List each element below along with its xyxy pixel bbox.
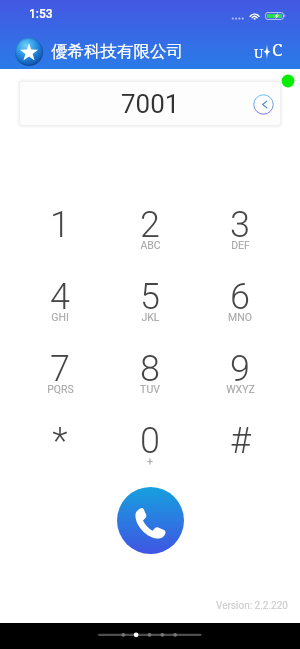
button[interactable]: Backspace xyxy=(251,92,275,116)
staticText: 6 xyxy=(230,276,250,318)
staticText: MNO xyxy=(228,311,252,323)
staticText: JKL xyxy=(141,311,160,323)
staticText: U xyxy=(254,44,264,62)
staticText: 優希科技有限公司 xyxy=(51,41,183,62)
staticText: 7 xyxy=(50,348,70,390)
button[interactable]: 4 xyxy=(15,273,105,345)
staticText: 4 xyxy=(50,276,70,318)
button[interactable]: 6 xyxy=(195,273,285,345)
button[interactable]: * xyxy=(15,417,105,489)
staticText: Version: 2.2.220 xyxy=(216,600,288,612)
button[interactable]: 7 xyxy=(15,345,105,417)
button[interactable]: Call xyxy=(117,487,184,554)
button[interactable]: 7001 xyxy=(20,82,280,125)
staticText: 1:53 xyxy=(29,7,53,21)
staticText: 2 xyxy=(140,204,160,246)
staticText: 9 xyxy=(230,348,250,390)
staticText: 5 xyxy=(140,276,160,318)
staticText: * xyxy=(52,420,68,462)
button[interactable]: 1 xyxy=(15,201,105,273)
button[interactable]: Logo xyxy=(15,38,43,66)
staticText: DEF xyxy=(231,239,250,251)
button[interactable]: 0 xyxy=(105,417,195,489)
staticText: TUV xyxy=(140,383,160,395)
staticText: # xyxy=(230,420,251,462)
button[interactable]: 2 xyxy=(105,201,195,273)
staticText: 8 xyxy=(140,348,160,390)
button[interactable]: 5 xyxy=(105,273,195,345)
staticText: 3 xyxy=(230,204,250,246)
button[interactable]: # xyxy=(195,417,285,489)
staticText: PQRS xyxy=(47,383,74,395)
button[interactable]: 3 xyxy=(195,201,285,273)
staticText: 7001 xyxy=(121,89,180,119)
button[interactable]: 9 xyxy=(195,345,285,417)
staticText: WXYZ xyxy=(226,383,255,395)
button[interactable]: 8 xyxy=(105,345,195,417)
staticText: ABC xyxy=(140,239,161,251)
staticText: + xyxy=(147,455,153,467)
staticText: C xyxy=(272,38,283,61)
staticText: 0 xyxy=(140,420,160,462)
button[interactable]: Brand xyxy=(252,38,290,62)
staticText: 1 xyxy=(50,204,70,246)
staticText: GHI xyxy=(51,311,69,323)
